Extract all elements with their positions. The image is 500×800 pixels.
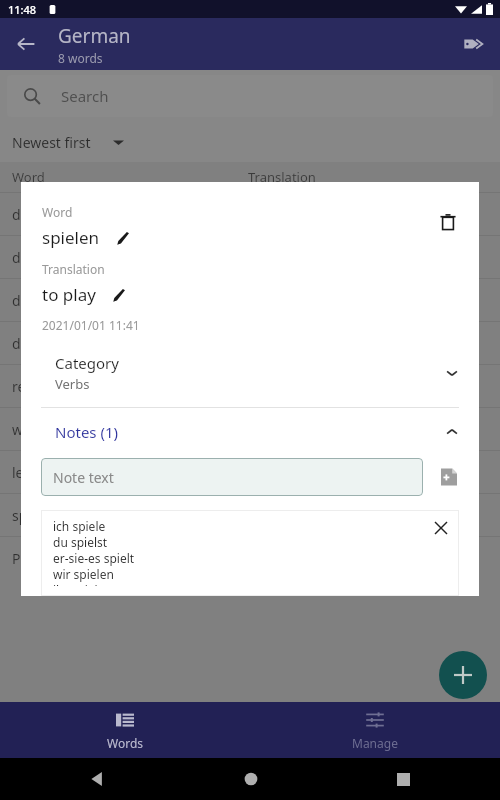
- button[interactable]: Notes (1): [21, 418, 479, 446]
- staticText: du spielst: [53, 534, 108, 550]
- button[interactable]: Add word: [439, 651, 487, 699]
- staticText: Word: [42, 204, 73, 220]
- staticText: spielen: [42, 226, 100, 249]
- button[interactable]: Manage: [250, 702, 500, 758]
- staticText: Verbs: [55, 375, 90, 393]
- button[interactable]: Add note: [435, 463, 463, 491]
- staticText: die Frau: [12, 291, 66, 310]
- button[interactable]: Delete: [430, 204, 466, 240]
- staticText: der Mann: [12, 205, 76, 224]
- button[interactable]: warten: [0, 408, 500, 450]
- button[interactable]: Category: [21, 351, 479, 399]
- button[interactable]: lesen: [0, 451, 500, 493]
- button[interactable]: Search: [7, 75, 493, 117]
- button[interactable]: die Frau: [0, 279, 500, 321]
- staticText: Newest first: [12, 133, 91, 152]
- button[interactable]: Words: [0, 702, 250, 758]
- staticText: to play: [42, 283, 96, 306]
- staticText: Category: [55, 353, 119, 373]
- staticText: der Hund: [12, 334, 75, 353]
- button[interactable]: der Mann: [0, 193, 500, 235]
- staticText: Translation: [248, 168, 316, 186]
- staticText: rennen: [12, 377, 60, 396]
- button[interactable]: rennen: [0, 365, 500, 407]
- button[interactable]: der Hund: [0, 322, 500, 364]
- staticText: warten: [12, 420, 59, 439]
- staticText: das Kind: [12, 248, 69, 267]
- button[interactable]: Tags: [454, 24, 494, 64]
- staticText: lesen: [12, 463, 47, 482]
- staticText: Search: [61, 86, 109, 106]
- button[interactable]: Newest first: [12, 133, 124, 152]
- staticText: Notes (1): [55, 422, 445, 442]
- staticText: Parkplatz: [12, 549, 74, 568]
- staticText: ich spiele: [53, 518, 106, 534]
- staticText: 2021/01/01 11:41: [42, 317, 140, 333]
- button[interactable]: Edit translation: [108, 284, 130, 306]
- staticText: Note text: [53, 468, 114, 487]
- staticText: German: [58, 23, 131, 49]
- button[interactable]: spielen: [0, 494, 500, 536]
- staticText: wir spielen: [53, 566, 114, 582]
- staticText: Translation: [42, 261, 105, 277]
- staticText: Word: [12, 168, 45, 186]
- staticText: to play: [248, 506, 293, 525]
- button[interactable]: ich spiele: [41, 510, 459, 596]
- button[interactable]: Back: [6, 24, 46, 64]
- button[interactable]: das Kind: [0, 236, 500, 278]
- button[interactable]: Remove note: [429, 516, 453, 540]
- button[interactable]: Parkplatz: [0, 537, 500, 579]
- staticText: 8 words: [58, 50, 103, 66]
- button[interactable]: Edit word: [112, 227, 134, 249]
- staticText: Words: [107, 735, 144, 751]
- staticText: spielen: [12, 506, 59, 525]
- button[interactable]: Note text: [41, 458, 423, 496]
- staticText: er-sie-es spielt: [53, 550, 135, 566]
- staticText: Manage: [352, 735, 398, 751]
- staticText: ihr spielt: [53, 582, 103, 586]
- staticText: 11:48: [8, 2, 37, 17]
